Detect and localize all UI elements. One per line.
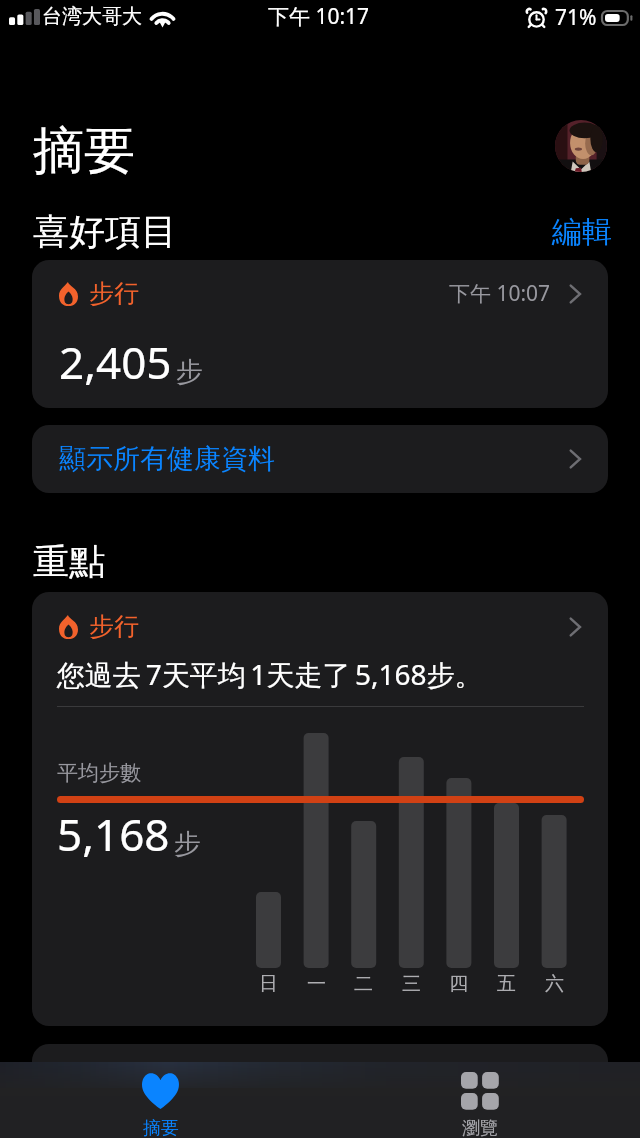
staticText: 六 [545, 972, 564, 996]
button[interactable]: 顯示所有健康資料 [32, 425, 608, 493]
staticText: 步 [174, 827, 201, 861]
staticText: 台湾大哥大 [42, 4, 142, 29]
staticText: 步 [176, 355, 203, 389]
staticText: 重點 [33, 539, 105, 584]
staticText: 平均步數 [57, 760, 141, 786]
staticText: 三 [402, 972, 421, 996]
button[interactable]: Profile [555, 120, 607, 172]
button[interactable]: 步行 [32, 260, 608, 408]
staticText: 摘要 [143, 1117, 179, 1138]
staticText: 瀏覽 [462, 1117, 498, 1138]
button[interactable]: 編輯 [544, 205, 620, 259]
button[interactable]: 摘要 [0, 1062, 320, 1138]
staticText: 下午 10:17 [268, 2, 370, 31]
staticText: 5,168 [57, 804, 170, 864]
staticText: 步行 [89, 278, 139, 309]
staticText: 2,405 [59, 332, 172, 392]
staticText: 喜好項目 [33, 209, 177, 254]
staticText: 一 [307, 972, 326, 996]
staticText: 下午 10:07 [449, 279, 551, 308]
button[interactable]: 日 [32, 592, 608, 1026]
staticText: 71% [555, 3, 597, 32]
staticText: 日 [259, 972, 278, 996]
staticText: 摘要 [33, 119, 135, 183]
staticText: 您過去 7天平均 1天走了 5,168步。 [57, 655, 483, 693]
staticText: 顯示所有健康資料 [59, 442, 275, 476]
button[interactable]: 瀏覽 [320, 1062, 640, 1138]
staticText: 步行 [89, 611, 139, 642]
staticText: 二 [354, 972, 373, 996]
staticText: 五 [497, 972, 516, 996]
staticText: 四 [449, 972, 468, 996]
button[interactable] [32, 1044, 608, 1074]
staticText: 編輯 [552, 213, 612, 251]
